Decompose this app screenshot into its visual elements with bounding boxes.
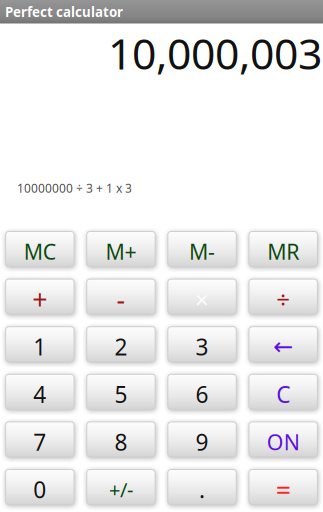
- button[interactable]: 1: [5, 326, 74, 362]
- staticText: C: [276, 379, 290, 409]
- staticText: ON: [267, 428, 300, 456]
- button[interactable]: 0: [5, 469, 74, 505]
- button[interactable]: MR: [248, 231, 318, 267]
- staticText: ×: [195, 283, 209, 315]
- staticText: 7: [33, 427, 46, 457]
- button[interactable]: 7: [5, 421, 74, 457]
- staticText: MR: [267, 237, 299, 266]
- button[interactable]: ×: [167, 279, 237, 315]
- staticText: 10,000,003: [108, 24, 322, 81]
- staticText: ←: [273, 333, 293, 360]
- button[interactable]: -: [86, 279, 156, 315]
- staticText: MC: [24, 237, 56, 266]
- button[interactable]: .: [167, 469, 237, 505]
- staticText: .: [199, 474, 205, 504]
- staticText: 4: [33, 379, 46, 409]
- staticText: M-: [189, 237, 215, 266]
- button[interactable]: 3: [167, 326, 237, 362]
- button[interactable]: MC: [5, 231, 74, 267]
- button[interactable]: M+: [86, 231, 156, 267]
- button[interactable]: C: [248, 374, 318, 410]
- staticText: -: [116, 281, 125, 317]
- button[interactable]: M-: [167, 231, 237, 267]
- button[interactable]: 2: [86, 326, 156, 362]
- staticText: 6: [196, 379, 209, 409]
- staticText: ÷: [276, 283, 290, 315]
- button[interactable]: +/-: [86, 469, 156, 505]
- staticText: 10000000 ÷ 3 + 1 x 3: [17, 180, 132, 196]
- button[interactable]: =: [248, 469, 318, 505]
- staticText: 1: [33, 332, 46, 362]
- staticText: =: [276, 472, 291, 507]
- button[interactable]: 8: [86, 421, 156, 457]
- staticText: 9: [196, 427, 209, 457]
- staticText: M+: [105, 237, 136, 266]
- button[interactable]: 9: [167, 421, 237, 457]
- button[interactable]: 4: [5, 374, 74, 410]
- button[interactable]: +: [5, 279, 74, 315]
- staticText: Perfect calculator: [5, 3, 123, 21]
- staticText: 3: [196, 332, 209, 362]
- staticText: 5: [114, 379, 127, 409]
- button[interactable]: ON: [248, 421, 318, 457]
- staticText: 0: [33, 474, 46, 504]
- button[interactable]: ←: [248, 326, 318, 362]
- button[interactable]: 6: [167, 374, 237, 410]
- staticText: +/-: [109, 476, 133, 503]
- staticText: +: [32, 281, 47, 317]
- button[interactable]: 5: [86, 374, 156, 410]
- staticText: 8: [114, 427, 127, 457]
- staticText: 2: [114, 332, 127, 362]
- button[interactable]: ÷: [248, 279, 318, 315]
